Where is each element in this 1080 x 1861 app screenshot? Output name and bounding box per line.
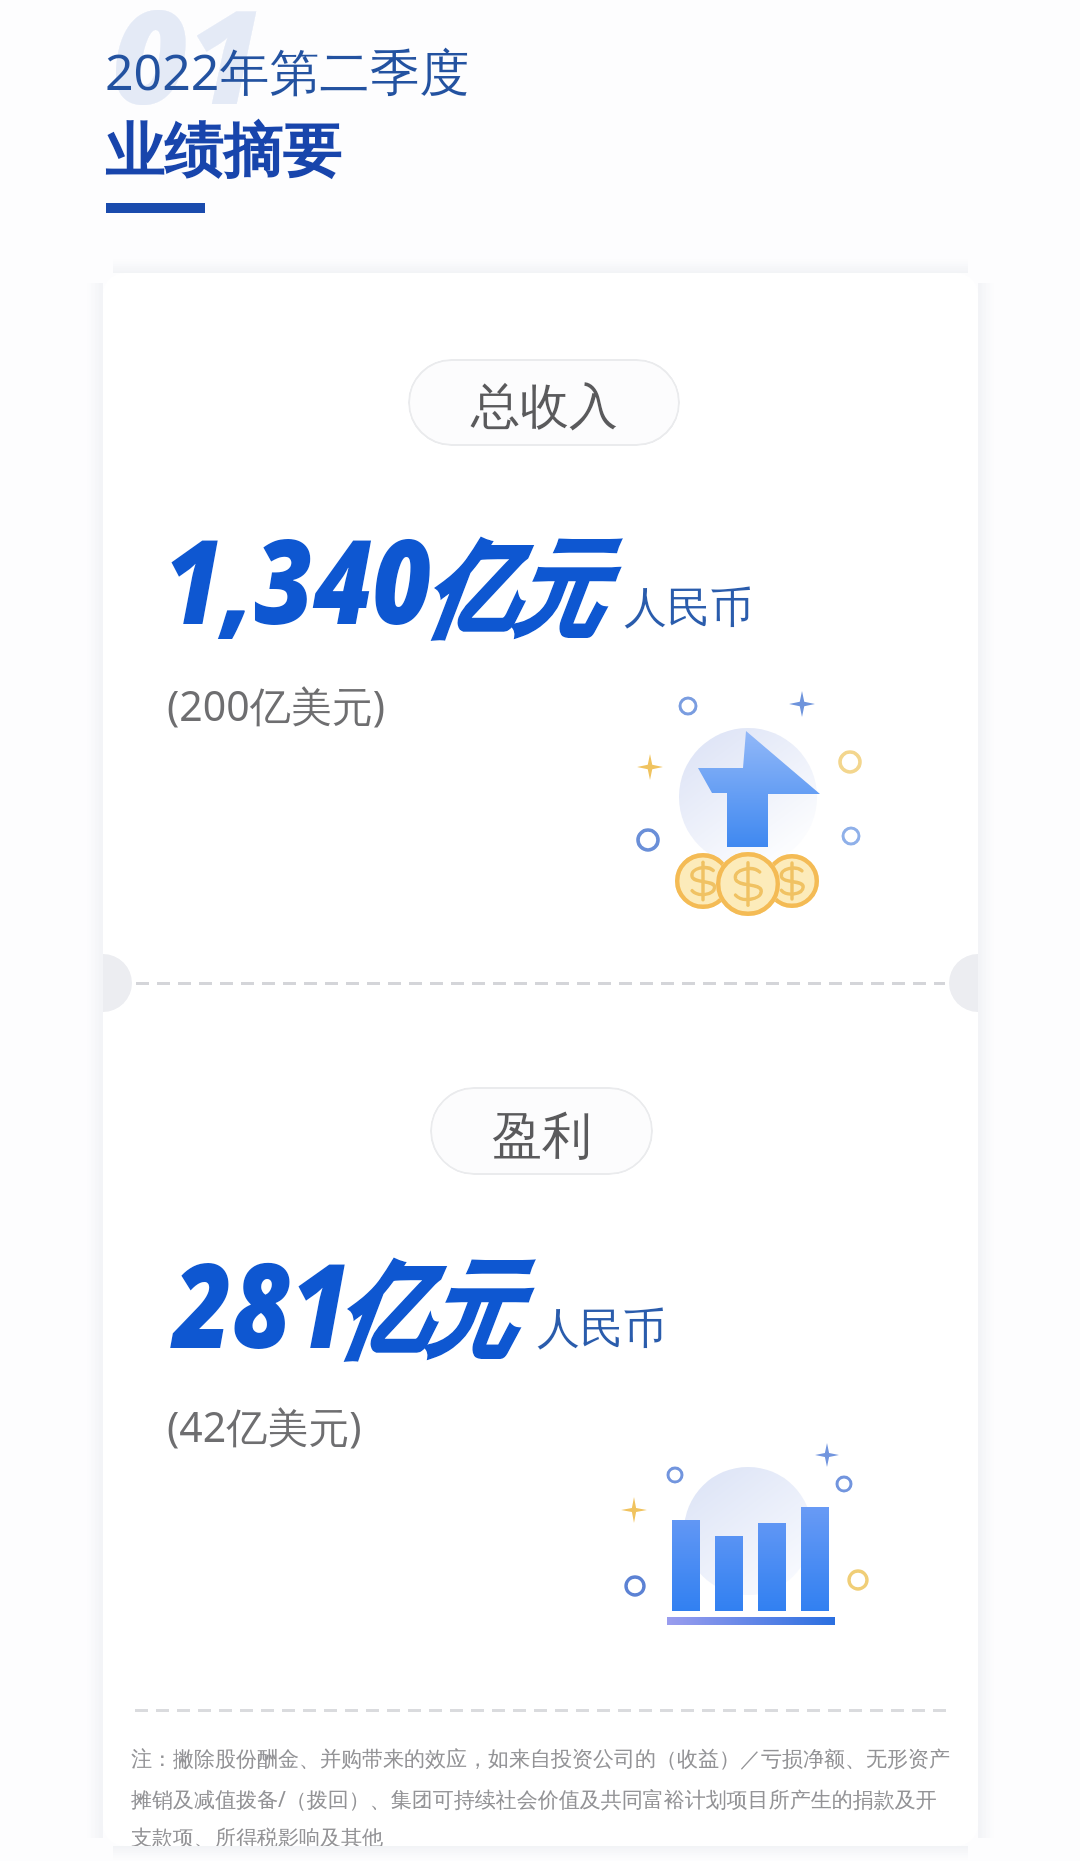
staticText: 盈利 bbox=[492, 1105, 592, 1168]
staticText: 1,340 bbox=[164, 499, 432, 658]
button[interactable]: 盈利 281亿元人民币 bbox=[103, 985, 978, 1707]
staticText: 人民币 bbox=[537, 1302, 666, 1356]
staticText: (200亿美元) bbox=[167, 677, 385, 733]
staticText: 注：撇除股份酬金、并购带来的效应，如来自投资公司的（收益）／亏损净额、无形资产摊… bbox=[131, 1746, 953, 1846]
staticText: 亿元 bbox=[425, 526, 600, 656]
staticText: 亿元 bbox=[338, 1247, 513, 1377]
button[interactable]: 盈利 bbox=[430, 1087, 653, 1175]
other: Growth arrow with coins and bar chart il… bbox=[0, 0, 1080, 1861]
staticText: 281 bbox=[173, 1223, 350, 1382]
button[interactable]: 总收入 bbox=[408, 359, 680, 446]
staticText: 2022年第二季度 bbox=[105, 37, 470, 105]
staticText: 人民币 bbox=[624, 581, 753, 635]
staticText: 业绩摘要 bbox=[105, 114, 341, 188]
staticText: 01 bbox=[112, 0, 263, 142]
button[interactable]: 总收入 1,340亿元人民币 bbox=[103, 273, 978, 983]
staticText: 总收入 bbox=[471, 376, 618, 438]
staticText: (42亿美元) bbox=[167, 1398, 362, 1454]
